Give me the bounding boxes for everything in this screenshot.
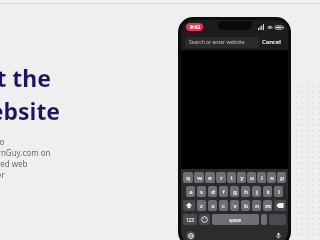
- button[interactable]: o: [267, 172, 276, 183]
- button[interactable]: z: [197, 200, 206, 211]
- button[interactable]: y: [237, 172, 246, 183]
- staticText: l: [278, 188, 280, 196]
- button[interactable]: Change keyboard language: [186, 231, 195, 240]
- button[interactable]: j: [252, 186, 261, 197]
- button[interactable]: c: [219, 200, 228, 211]
- button[interactable]: s: [197, 186, 206, 197]
- staticText: space: [229, 217, 242, 223]
- button[interactable]: p: [277, 172, 286, 183]
- button[interactable]: i: [257, 172, 266, 183]
- staticText: c: [222, 202, 225, 210]
- button[interactable]: g: [230, 186, 239, 197]
- staticText: v: [233, 202, 237, 210]
- staticText: n: [255, 202, 259, 210]
- staticText: e: [208, 174, 212, 182]
- button[interactable]: r: [216, 172, 226, 183]
- button[interactable]: k: [263, 186, 272, 197]
- staticText: preferred web: [0, 158, 28, 169]
- staticText: r: [220, 174, 223, 182]
- staticText: m: [265, 202, 271, 210]
- staticText: w: [197, 174, 202, 182]
- button[interactable]: e: [205, 172, 215, 183]
- button[interactable]: Dictate: [273, 230, 283, 240]
- staticText: s: [200, 188, 203, 196]
- staticText: website: [0, 95, 61, 126]
- staticText: t: [230, 174, 233, 182]
- button[interactable]: b: [241, 200, 250, 211]
- staticText: Set the: [0, 62, 52, 93]
- staticText: y: [240, 174, 244, 182]
- staticText: browser: [0, 169, 5, 180]
- button[interactable]: space: [212, 214, 259, 225]
- button[interactable]: x: [208, 200, 217, 211]
- staticText: z: [200, 202, 203, 210]
- staticText: u: [250, 174, 254, 182]
- button[interactable]: Shift: [183, 200, 195, 211]
- button[interactable]: Emoji: [199, 214, 210, 225]
- button[interactable]: f: [219, 186, 228, 197]
- button[interactable]: t: [227, 172, 236, 183]
- staticText: b: [244, 202, 248, 210]
- staticText: o: [270, 174, 274, 182]
- button[interactable]: Period: [261, 214, 267, 225]
- staticText: 9:42: [190, 24, 200, 31]
- staticText: g: [233, 188, 237, 196]
- staticText: Cancel: [262, 38, 281, 46]
- staticText: i: [261, 174, 263, 182]
- staticText: q: [186, 174, 190, 182]
- button[interactable]: 123: [183, 214, 197, 225]
- staticText: k: [266, 188, 270, 196]
- staticText: x: [211, 202, 215, 210]
- button[interactable]: w: [194, 172, 204, 183]
- staticText: d: [211, 188, 215, 196]
- staticText: j: [256, 188, 258, 196]
- staticText: ThePornGuy.com on: [0, 147, 51, 158]
- staticText: Open to: [0, 136, 5, 147]
- button[interactable]: m: [263, 200, 272, 211]
- button[interactable]: n: [252, 200, 261, 211]
- button[interactable]: Search or enter website name: [185, 37, 259, 48]
- button[interactable]: d: [208, 186, 217, 197]
- button[interactable]: u: [247, 172, 256, 183]
- button[interactable]: l: [274, 186, 283, 197]
- staticText: Search or enter website name: [189, 39, 255, 46]
- button[interactable]: a: [186, 186, 195, 197]
- staticText: h: [244, 188, 248, 196]
- button[interactable]: v: [230, 200, 239, 211]
- button[interactable]: Go: [269, 214, 286, 225]
- button[interactable]: Cancel: [259, 35, 284, 49]
- staticText: f: [222, 188, 225, 196]
- button[interactable]: h: [241, 186, 250, 197]
- button[interactable]: Delete: [274, 200, 286, 211]
- staticText: 123: [186, 217, 194, 223]
- staticText: a: [189, 188, 193, 196]
- staticText: p: [280, 174, 284, 182]
- button[interactable]: q: [183, 172, 193, 183]
